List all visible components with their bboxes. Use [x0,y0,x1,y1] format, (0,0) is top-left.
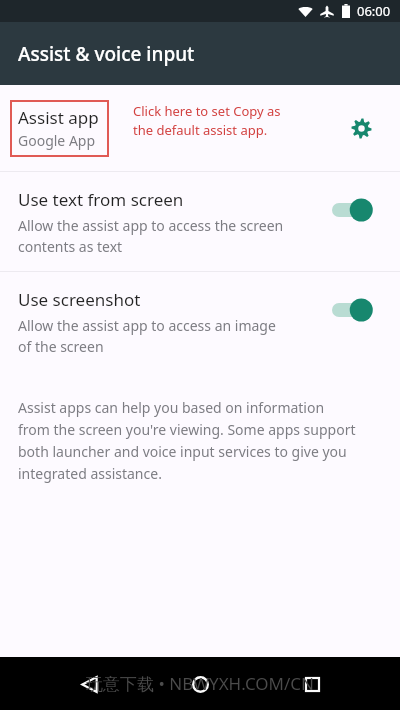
staticText: Assist apps can help you based on inform… [18,398,325,417]
button[interactable]: Recent apps [289,661,335,707]
staticText: Assist & voice input [18,41,195,67]
staticText: Click here to set Copy as [133,102,281,120]
staticText: 玩意下载 • NBWYXH.COM/CN [86,672,314,695]
staticText: the default assist app. [133,121,268,139]
staticText: from the screen you're viewing. Some app… [18,420,356,439]
button[interactable]: Use text from screen [0,172,400,271]
staticText: both launcher and voice input services t… [18,442,347,461]
button[interactable]: Use screenshot [0,272,400,371]
staticText: Assist app [18,106,99,129]
staticText: Use screenshot [18,288,141,311]
button[interactable]: Home [177,661,223,707]
staticText: integrated assistance. [18,464,162,483]
staticText: Google App [18,131,96,150]
staticText: 06:00 [357,2,391,20]
button[interactable]: Assist app settings [344,111,378,145]
staticText: Allow the assist app to access the scree… [18,216,284,235]
staticText: Use text from screen [18,188,184,211]
staticText: of the screen [18,337,104,356]
button[interactable]: Use text from screen toggle [332,194,384,226]
staticText: Allow the assist app to access an image [18,316,276,335]
staticText: contents as text [18,237,123,256]
button[interactable]: Back [66,661,112,707]
button[interactable]: Assist app [0,85,400,171]
button[interactable]: Use screenshot toggle [332,294,384,326]
